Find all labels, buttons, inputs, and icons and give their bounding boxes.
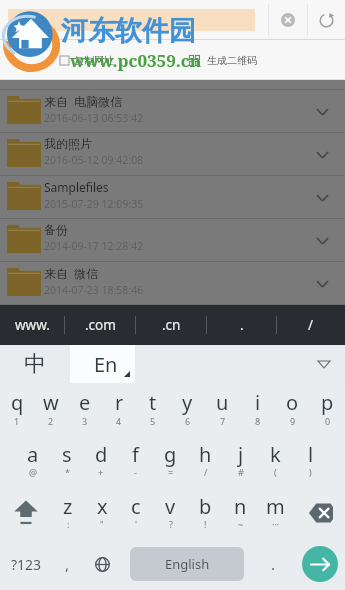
button[interactable]: u <box>205 383 240 434</box>
button[interactable]: 来自 电脑微信 <box>0 90 345 133</box>
button[interactable]: z <box>51 486 85 538</box>
button[interactable]: En <box>70 345 135 383</box>
button[interactable]: Expand <box>300 133 345 176</box>
staticText: English <box>165 555 210 573</box>
button[interactable]: h <box>188 434 223 486</box>
button[interactable]: Hide keyboard <box>303 345 345 383</box>
button[interactable]: 我的照片 <box>0 133 345 176</box>
button[interactable]: Expand <box>300 90 345 133</box>
button[interactable]: b <box>188 486 223 538</box>
button[interactable]: Expand <box>300 219 345 262</box>
staticText: 2016-06-13 06:53:42 <box>44 111 144 125</box>
button[interactable]: o <box>275 383 310 434</box>
button[interactable]: Expand <box>300 262 345 305</box>
button[interactable]: . <box>251 538 295 590</box>
button[interactable] <box>0 0 268 40</box>
button[interactable]: g <box>153 434 188 486</box>
button[interactable]: d <box>84 434 118 486</box>
button[interactable]: x <box>85 486 119 538</box>
button[interactable]: a <box>16 434 50 486</box>
button[interactable]: y <box>170 383 205 434</box>
staticText: 2014-09-17 12:28:42 <box>44 239 144 253</box>
button[interactable]: v <box>153 486 188 538</box>
button[interactable]: k <box>258 434 293 486</box>
staticText: 1 <box>14 415 20 427</box>
staticText: ?123 <box>11 555 42 574</box>
staticText: 4 <box>116 415 122 427</box>
staticText: , <box>65 554 70 574</box>
staticText: 我的照片 <box>44 136 92 151</box>
button[interactable]: q <box>0 383 34 434</box>
staticText: 6 <box>185 415 191 427</box>
button[interactable]: p <box>310 383 345 434</box>
button[interactable]: www. <box>0 305 65 345</box>
staticText: f <box>132 441 139 468</box>
staticText: 2 <box>48 415 54 427</box>
staticText: g <box>164 441 177 468</box>
staticText: ) <box>309 466 312 478</box>
staticText: 生成二维码 <box>207 54 257 67</box>
button[interactable]: w <box>34 383 68 434</box>
button[interactable]: Expand <box>300 176 345 219</box>
button[interactable]: 复制网址 <box>60 54 114 67</box>
button[interactable]: Shift <box>0 486 51 538</box>
staticText: ? <box>169 518 173 530</box>
staticText: ··· <box>272 518 280 530</box>
staticText: / <box>204 466 208 478</box>
staticText: ' <box>135 518 138 530</box>
button[interactable]: n <box>223 486 258 538</box>
button[interactable]: Samplefiles <box>0 176 345 219</box>
button[interactable]: 中 <box>0 345 70 383</box>
button[interactable]: f <box>118 434 153 486</box>
button[interactable]: l <box>293 434 328 486</box>
button[interactable]: Go <box>302 546 338 582</box>
staticText: j <box>238 441 244 468</box>
button[interactable]: .com <box>65 305 136 345</box>
button[interactable]: e <box>68 383 102 434</box>
staticText: . <box>271 554 276 574</box>
button[interactable]: 来自 微信 <box>0 262 345 305</box>
staticText: 来自 微信 <box>44 265 99 281</box>
staticText: " <box>100 518 104 530</box>
button[interactable]: c <box>119 486 153 538</box>
button[interactable]: r <box>102 383 136 434</box>
staticText: 2015-07-29 12:09:35 <box>44 197 144 211</box>
button[interactable]: i <box>240 383 275 434</box>
staticText: p <box>321 389 334 416</box>
staticText: @ <box>29 466 38 478</box>
button[interactable]: s <box>50 434 84 486</box>
button[interactable]: ?123 <box>0 538 52 590</box>
staticText: : <box>67 518 70 530</box>
staticText: 复制网址 <box>74 54 114 67</box>
button[interactable]: Backspace <box>293 486 345 538</box>
button[interactable]: . <box>207 305 277 345</box>
staticText: x <box>97 493 108 520</box>
button[interactable]: Refresh <box>308 0 345 40</box>
staticText: n <box>234 493 247 520</box>
button[interactable]: 备份 <box>0 219 345 262</box>
button[interactable]: j <box>223 434 258 486</box>
staticText: l <box>308 441 314 468</box>
staticText: r <box>115 389 124 416</box>
button[interactable]: 生成二维码 <box>189 54 257 67</box>
staticText: En <box>94 351 118 378</box>
button[interactable]: t <box>136 383 170 434</box>
staticText: .com <box>85 316 116 334</box>
button[interactable]: / <box>277 305 345 345</box>
staticText: Samplefiles <box>44 179 109 195</box>
staticText: c <box>131 493 141 520</box>
staticText: ~ <box>238 518 244 530</box>
button[interactable]: English <box>130 547 244 581</box>
staticText: s <box>62 441 72 468</box>
staticText: 8 <box>255 415 261 427</box>
button[interactable]: Change language <box>82 538 122 590</box>
staticText: . <box>240 316 244 334</box>
button[interactable]: m <box>258 486 293 538</box>
staticText: b <box>199 493 212 520</box>
staticText: 来自 电脑微信 <box>44 93 123 109</box>
button[interactable]: , <box>52 538 82 590</box>
button[interactable]: Clear <box>269 0 307 40</box>
staticText: www.pc0359.cn <box>70 49 202 72</box>
button[interactable]: .cn <box>136 305 207 345</box>
staticText: y <box>182 389 193 416</box>
